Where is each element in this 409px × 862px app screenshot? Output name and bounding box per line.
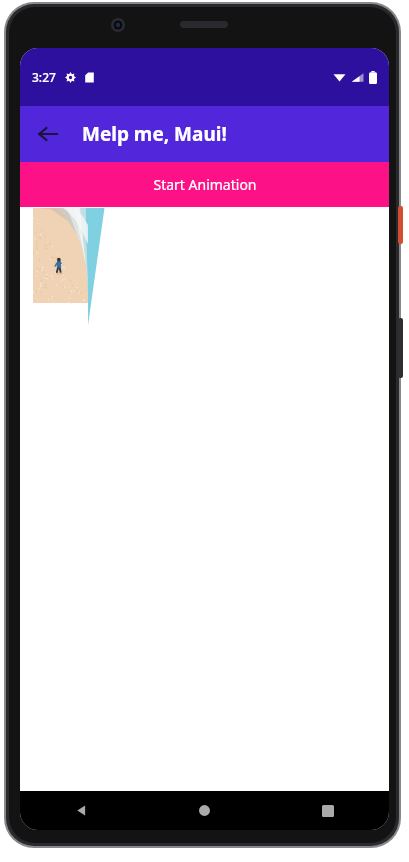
staticText: Melp me, Maui!: [82, 121, 227, 147]
button[interactable]: Home: [143, 791, 266, 830]
staticText: Start Animation: [153, 175, 257, 194]
button[interactable]: Back: [20, 791, 143, 830]
button[interactable]: Recent apps: [266, 791, 389, 830]
staticText: 3:27: [32, 69, 56, 85]
button[interactable]: Start Animation: [20, 162, 389, 207]
button[interactable]: Back: [26, 112, 70, 156]
